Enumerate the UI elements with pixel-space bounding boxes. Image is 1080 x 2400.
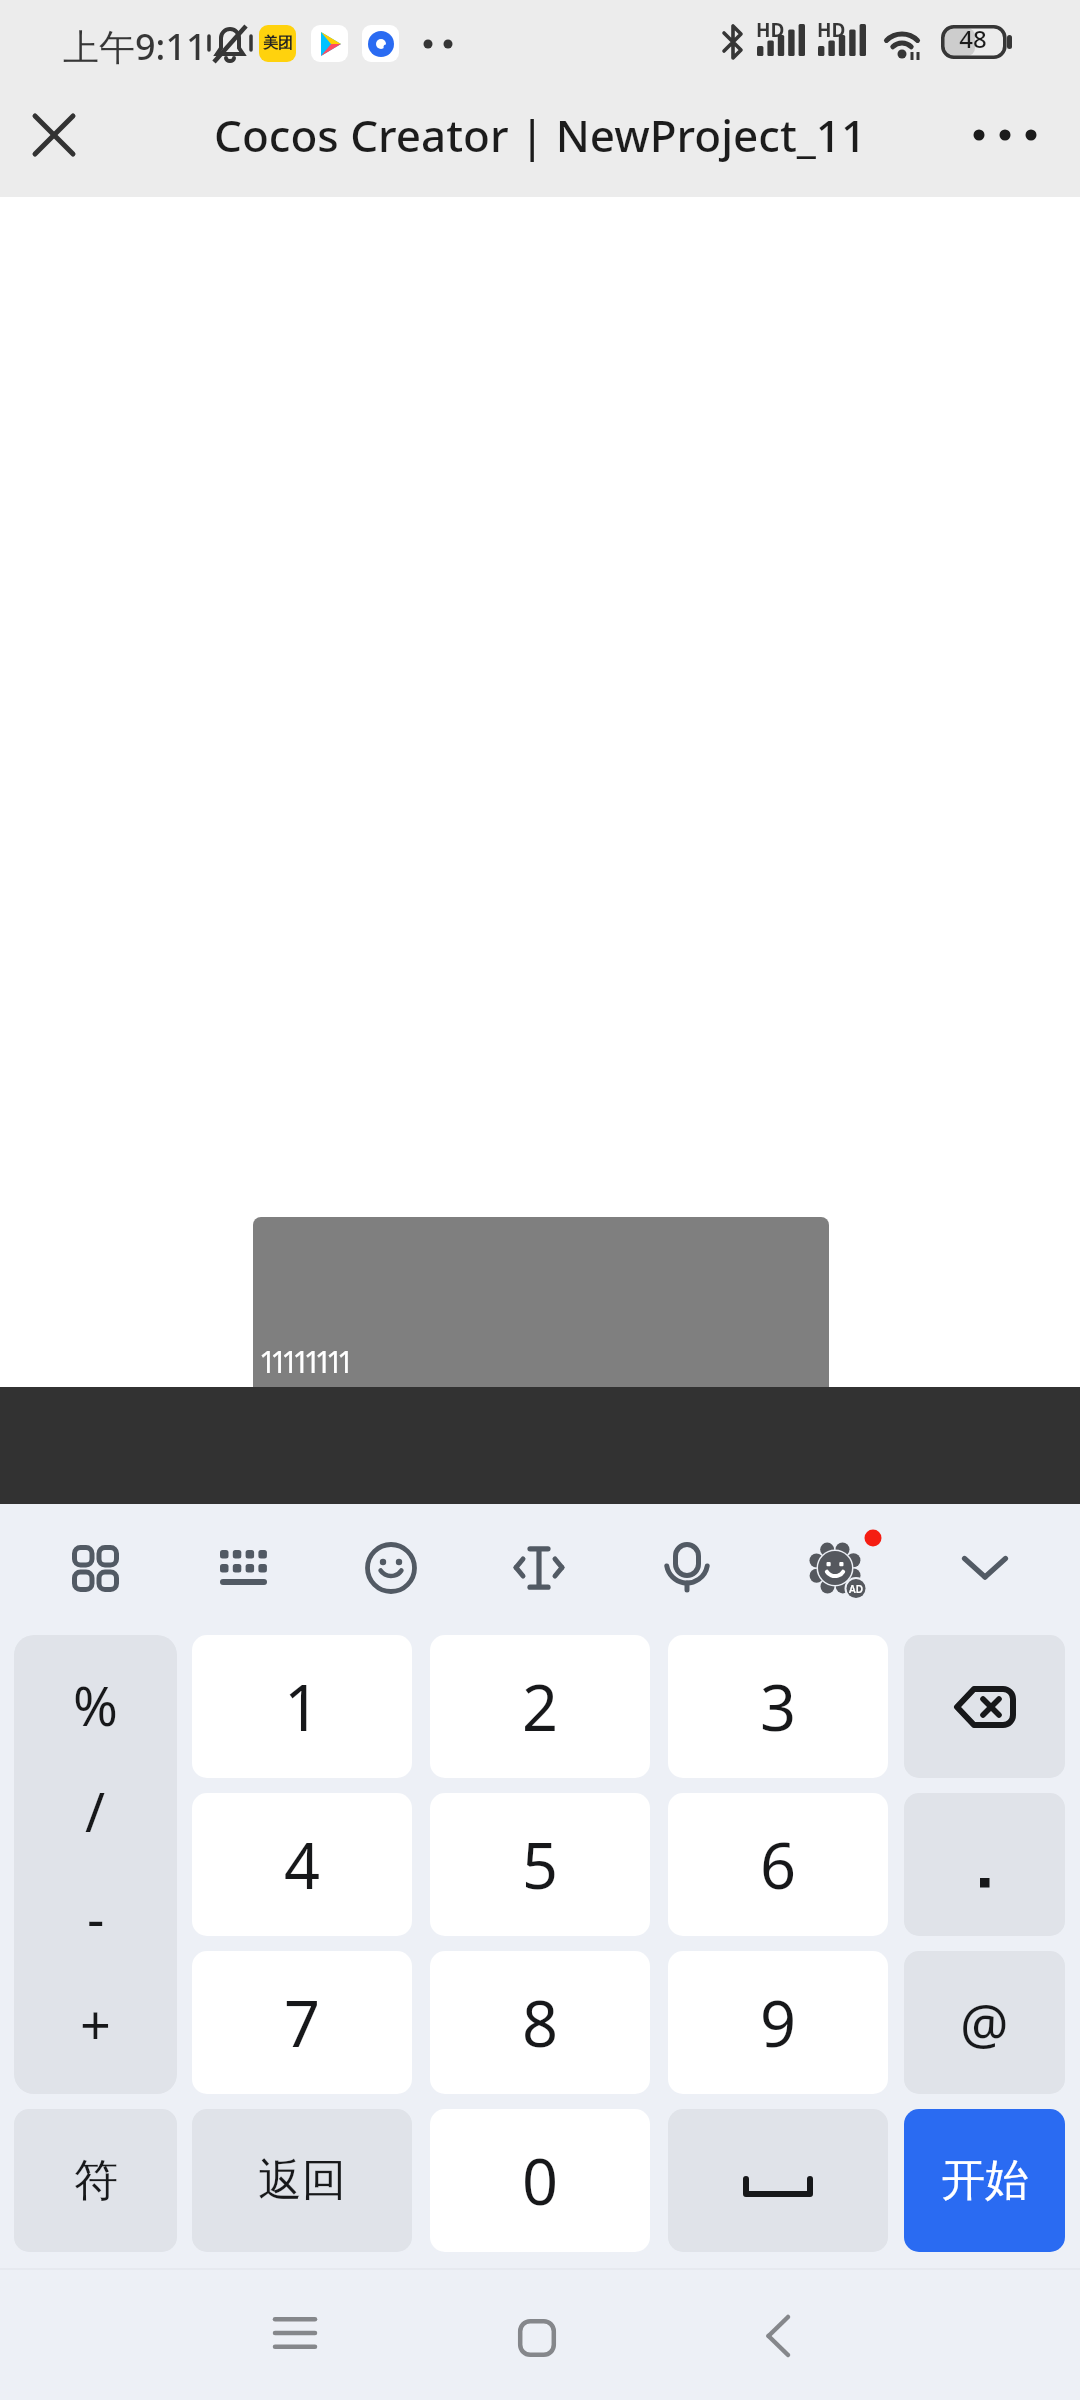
staticText: 美团 [263, 34, 293, 53]
button[interactable] [20, 101, 88, 169]
button[interactable]: 6 [668, 1793, 888, 1936]
button[interactable] [655, 1536, 719, 1600]
button[interactable]: 5 [430, 1793, 650, 1936]
button[interactable]: 开始 [904, 2109, 1065, 2252]
staticText: 48 [953, 22, 993, 55]
staticText: / [85, 1774, 106, 1848]
staticText: Cocos Creator | NewProject_11 [214, 105, 867, 165]
button[interactable]: 7 [192, 1951, 412, 2094]
staticText: 上午9:11 [63, 22, 207, 71]
button[interactable] [904, 1793, 1065, 1936]
button[interactable] [251, 2289, 339, 2377]
staticText: HD [817, 17, 846, 43]
staticText: 3 [760, 1664, 797, 1750]
staticText: - [87, 1881, 105, 1955]
button[interactable]: 4 [192, 1793, 412, 1936]
staticText: 6 [760, 1822, 797, 1908]
button[interactable]: 8 [430, 1951, 650, 2094]
staticText: 1 [284, 1664, 321, 1750]
staticText: 0 [522, 2138, 559, 2224]
staticText: 返回 [258, 2153, 346, 2208]
staticText: 8 [522, 1980, 559, 2066]
button[interactable]: 符 [14, 2109, 177, 2252]
staticText: @ [960, 1986, 1009, 2060]
staticText: + [80, 1987, 111, 2061]
button[interactable] [734, 2292, 822, 2380]
button[interactable] [359, 1536, 423, 1600]
button[interactable]: % [14, 1635, 177, 2094]
button[interactable] [211, 1536, 275, 1600]
button[interactable] [668, 2109, 888, 2252]
staticText: AD [849, 1582, 864, 1596]
staticText: 9 [760, 1980, 797, 2066]
button[interactable] [953, 1536, 1017, 1600]
staticText: 5 [522, 1822, 559, 1908]
button[interactable]: 2 [430, 1635, 650, 1778]
staticText: 符 [74, 2153, 118, 2208]
staticText: % [73, 1668, 118, 1742]
button[interactable]: @ [904, 1951, 1065, 2094]
button[interactable]: AD [806, 1536, 870, 1600]
button[interactable]: 0 [430, 2109, 650, 2252]
staticText: 2 [522, 1664, 559, 1750]
button[interactable] [493, 2294, 581, 2382]
button[interactable]: 1 [192, 1635, 412, 1778]
staticText: 11111111 [259, 1341, 349, 1382]
button[interactable] [904, 1635, 1065, 1778]
button[interactable] [507, 1536, 571, 1600]
staticText: 4 [284, 1822, 321, 1908]
button[interactable]: 3 [668, 1635, 888, 1778]
button[interactable]: 9 [668, 1951, 888, 2094]
staticText: HD [756, 17, 785, 43]
staticText: 开始 [941, 2153, 1029, 2208]
button[interactable]: 返回 [192, 2109, 412, 2252]
staticText: 7 [284, 1980, 321, 2066]
button[interactable] [63, 1536, 127, 1600]
button[interactable] [960, 101, 1050, 169]
